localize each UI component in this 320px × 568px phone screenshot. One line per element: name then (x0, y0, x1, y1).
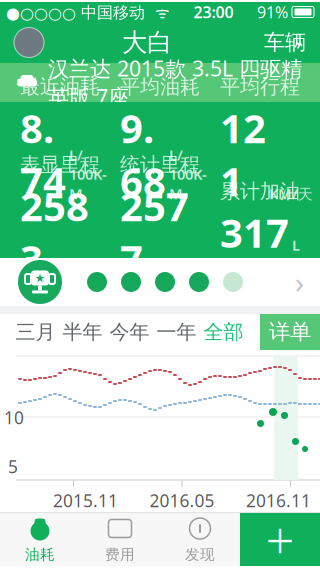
staticText: 9.68 (120, 101, 166, 207)
staticText: 91% (257, 1, 288, 23)
button[interactable]: 今年 (106, 314, 153, 350)
staticText: 表显里程 (20, 153, 100, 177)
staticText: › (295, 262, 304, 301)
button[interactable]: 详单 (260, 314, 320, 350)
staticText: L/100KM (69, 145, 107, 203)
staticText: 大白 (122, 27, 172, 58)
button[interactable]: ★ (0, 258, 320, 306)
staticText: 317 (220, 206, 289, 259)
staticText: 三月 (15, 320, 55, 344)
staticText: 2016.05 (149, 489, 214, 512)
staticText: KM (192, 262, 215, 281)
staticText: 费用 (105, 545, 135, 563)
button[interactable]: 发现 (160, 515, 240, 564)
button[interactable]: 费用 (80, 515, 160, 564)
button[interactable]: 全部 (200, 314, 247, 350)
button[interactable]: 半年 (59, 314, 106, 350)
staticText: 5 (8, 455, 18, 478)
staticText: 汉兰达 2015款 3.5L 四驱精英版 7座 (48, 54, 302, 111)
staticText: 油耗 (25, 545, 55, 563)
staticText: 2016.11 (246, 489, 311, 512)
staticText: L/100KM (169, 145, 207, 203)
staticText: 平均油耗 (120, 75, 200, 99)
staticText: ●○○○○ 中国移动 ᯤ (6, 1, 170, 23)
staticText: KM (92, 262, 115, 281)
staticText: 车辆 (264, 29, 306, 56)
staticText: 详单 (269, 319, 311, 345)
button[interactable]: 油耗 (0, 515, 80, 564)
button[interactable]: Profile (0, 27, 44, 57)
button[interactable]: Add record (240, 513, 320, 566)
staticText: 统计里程 (120, 153, 200, 177)
staticText: 23:00 (193, 1, 233, 23)
staticText: 半年 (62, 320, 102, 344)
staticText: L (292, 235, 300, 255)
staticText: 全部 (203, 320, 243, 344)
staticText: 2577 (120, 179, 189, 285)
staticText: 2583 (20, 179, 89, 285)
staticText: 最近油耗 (20, 75, 100, 99)
staticText: 今年 (109, 320, 149, 344)
staticText: 发现 (185, 545, 215, 563)
button[interactable]: 一年 (153, 314, 200, 350)
staticText: 10 (4, 406, 24, 429)
button[interactable]: 三月 (12, 314, 59, 350)
staticText: 2015.11 (53, 489, 118, 512)
staticText: + (265, 506, 294, 568)
staticText: 8.74 (20, 101, 66, 207)
staticText: 累计加油 (220, 179, 300, 204)
staticText: 121 (220, 101, 266, 207)
staticText: 平均行程 (220, 75, 300, 99)
staticText: 一年 (156, 320, 196, 344)
staticText: ★ (34, 271, 45, 285)
staticText: KM/天 (269, 184, 313, 203)
button[interactable]: 汉兰达 2015款 3.5L 四驱精英版 7座 (0, 63, 320, 102)
button[interactable]: 车辆 (250, 22, 320, 62)
